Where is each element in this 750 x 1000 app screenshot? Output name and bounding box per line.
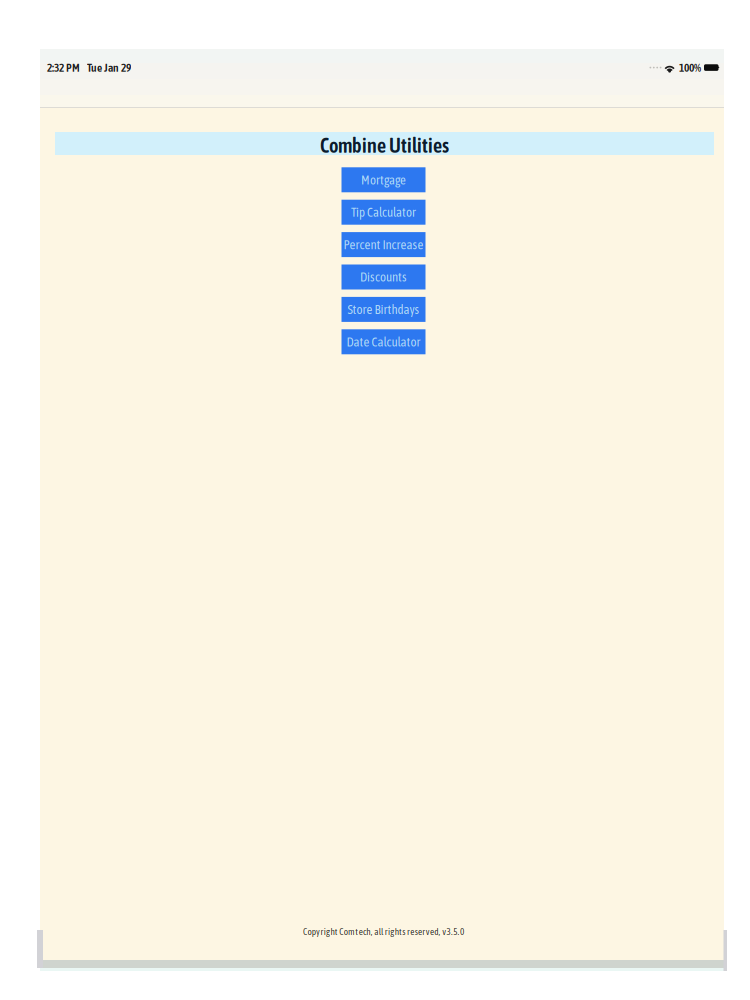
staticText: Mortgage [361, 172, 406, 187]
staticText: Tue Jan 29 [87, 61, 131, 74]
staticText: Percent Increase [343, 237, 423, 252]
button[interactable]: Store Birthdays [341, 297, 425, 322]
button[interactable]: Mortgage [341, 167, 425, 192]
button[interactable]: Tip Calculator [341, 200, 425, 225]
button[interactable]: Discounts [341, 264, 425, 289]
button[interactable]: Percent Increase [341, 232, 425, 257]
staticText: Copyright Comtech, all rights reserved, … [303, 926, 464, 937]
staticText: 2:32 PM [47, 61, 80, 74]
staticText: Store Birthdays [347, 302, 419, 317]
staticText: Discounts [360, 270, 407, 284]
staticText: Tip Calculator [351, 205, 416, 220]
staticText: Combine Utilities [320, 134, 449, 157]
staticText: Date Calculator [346, 334, 420, 349]
staticText: 100% [679, 61, 701, 74]
button[interactable]: Date Calculator [341, 329, 425, 354]
